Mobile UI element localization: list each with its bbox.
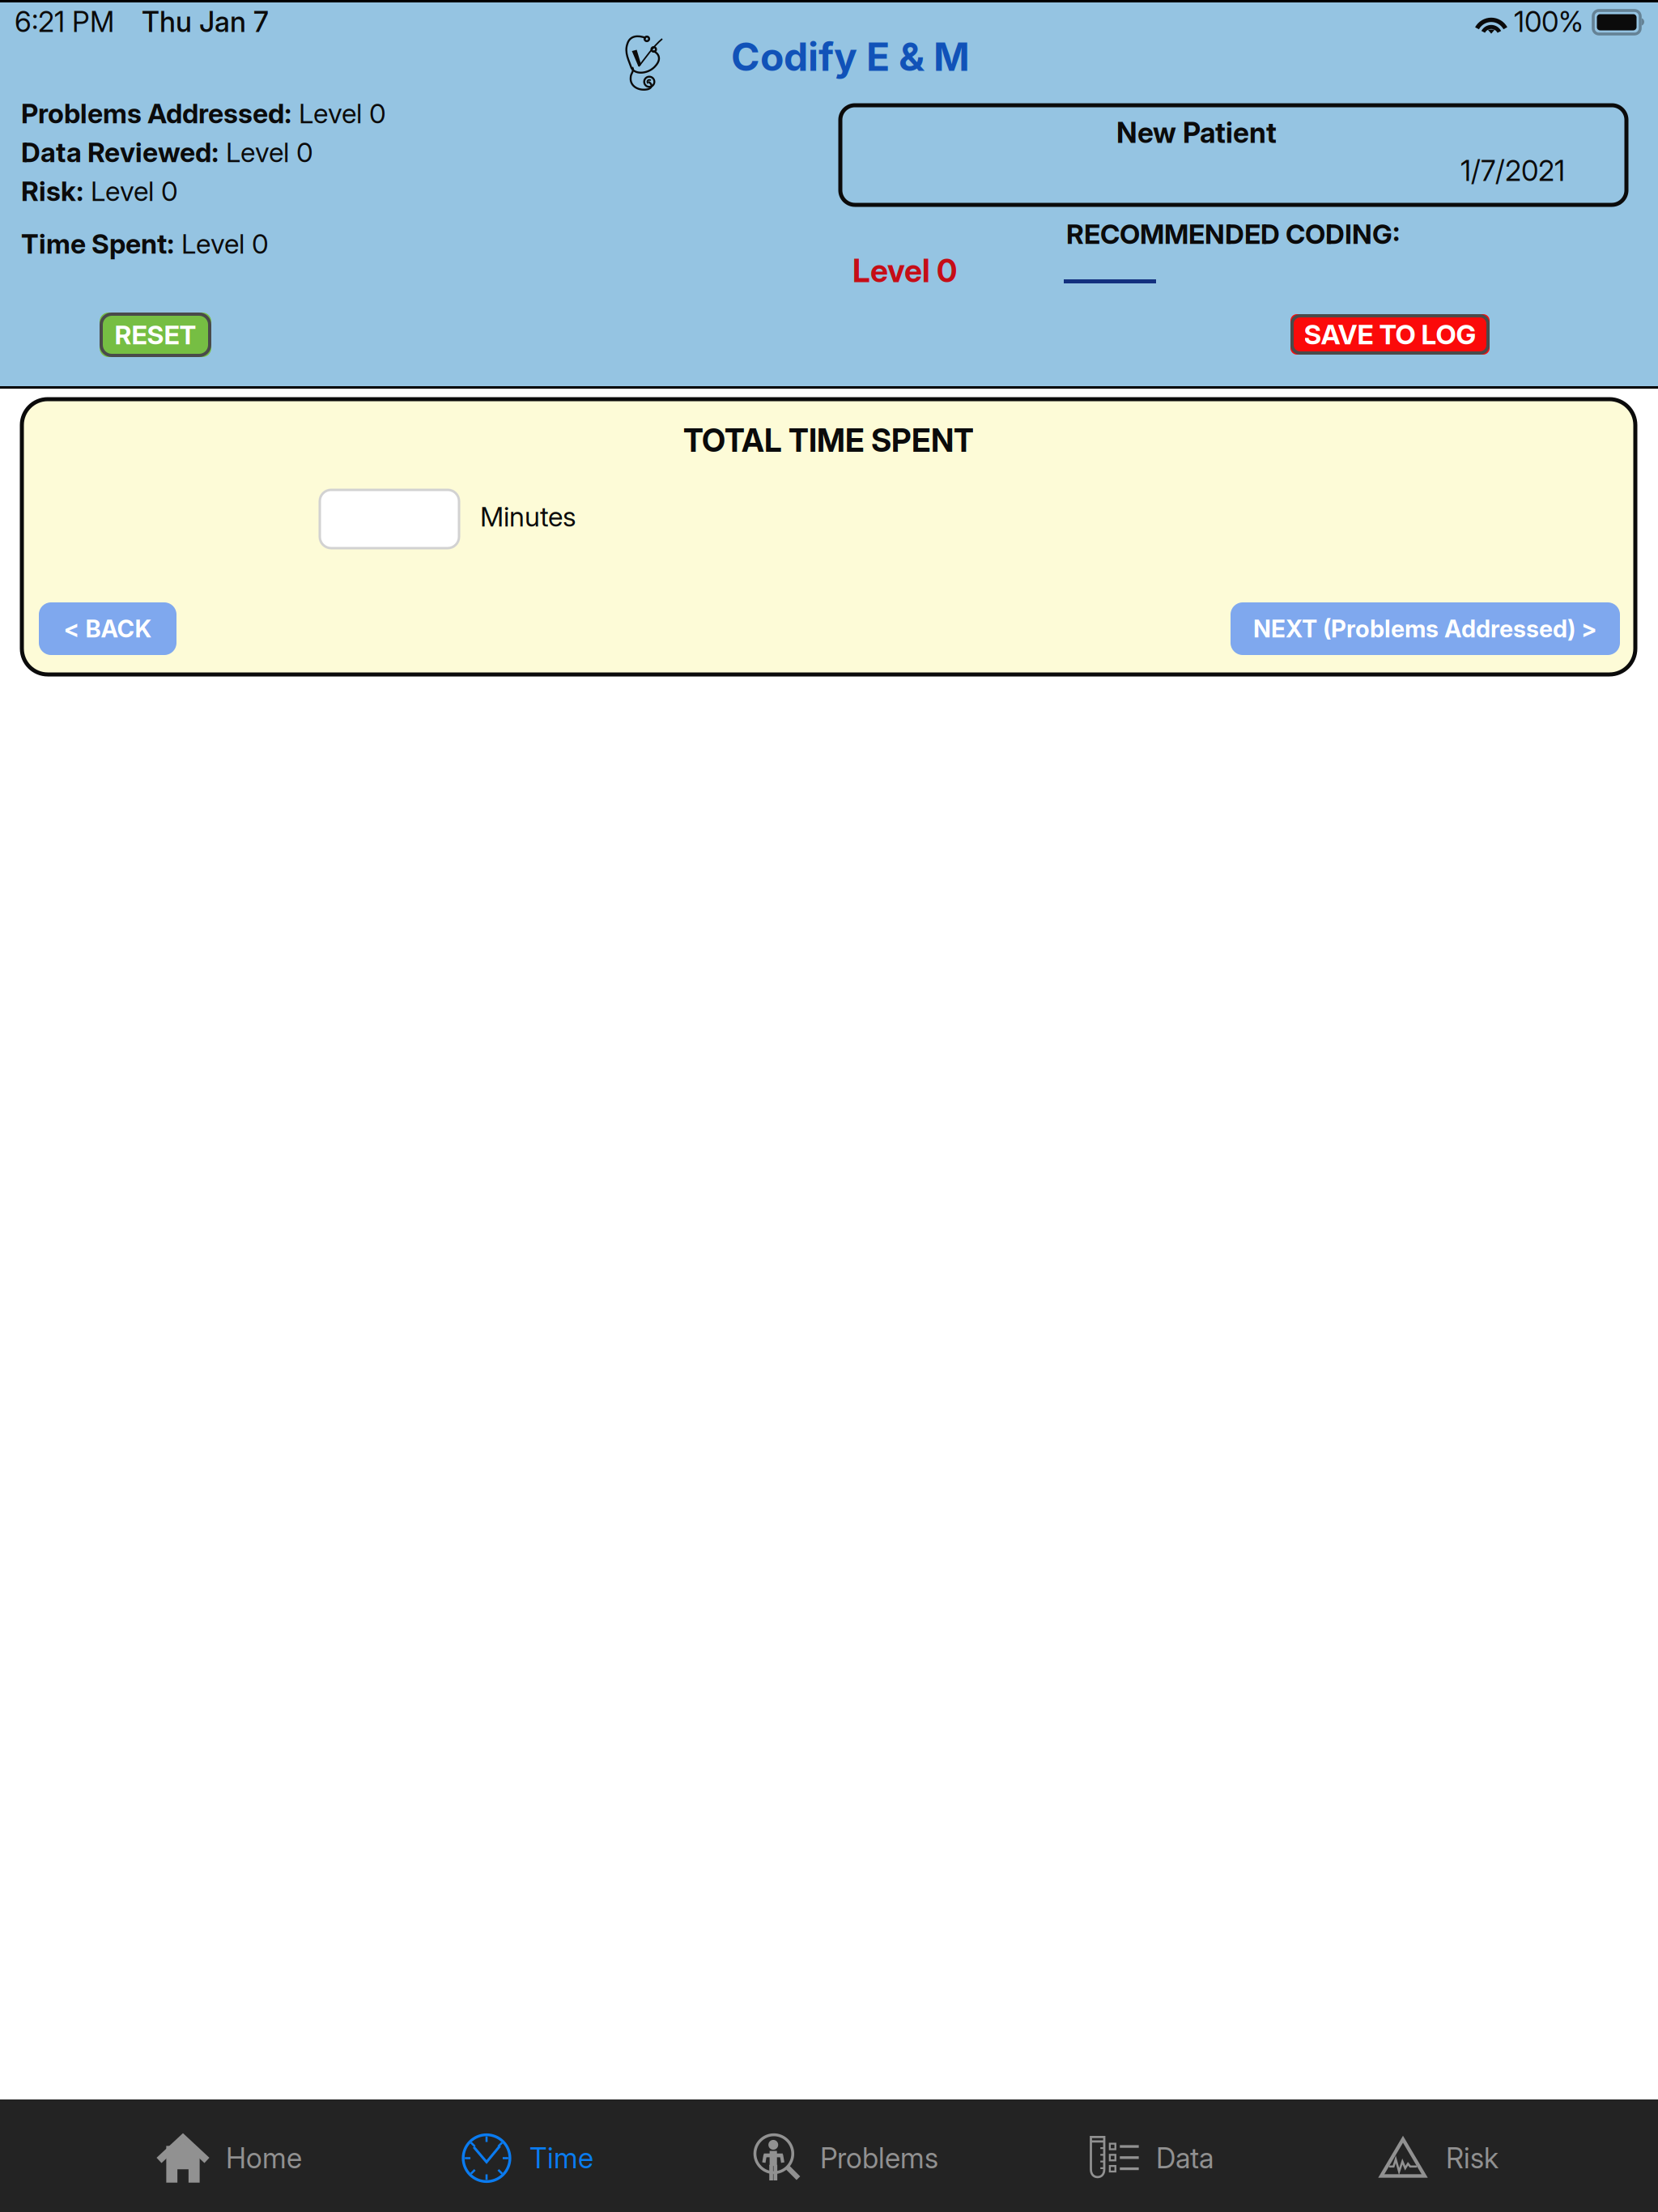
button[interactable]: Problems bbox=[750, 2102, 941, 2212]
staticText: Level 0 bbox=[852, 252, 957, 290]
staticText: NEXT (Problems Addressed) > bbox=[1253, 614, 1597, 643]
staticText: 1/7/2021 bbox=[1460, 154, 1565, 188]
button[interactable]: Data bbox=[1086, 2102, 1224, 2212]
button[interactable]: Home bbox=[156, 2102, 310, 2212]
staticText: Level 0 bbox=[174, 227, 269, 260]
staticText: Risk: bbox=[21, 175, 83, 207]
button[interactable]: RESET bbox=[100, 313, 211, 357]
staticText: Data bbox=[1156, 2141, 1214, 2175]
staticText: RECOMMENDED CODING: bbox=[1066, 218, 1400, 250]
staticText: Time bbox=[529, 2141, 593, 2175]
staticText: Risk bbox=[1446, 2141, 1499, 2175]
staticText: Problems bbox=[820, 2141, 938, 2175]
staticText: Time Spent: bbox=[21, 227, 174, 260]
staticText: Level 0 bbox=[291, 97, 386, 130]
staticText: Data Reviewed: bbox=[21, 136, 219, 168]
button[interactable]: < BACK bbox=[39, 602, 176, 655]
staticText: Codify E & M bbox=[731, 33, 970, 80]
button[interactable]: SAVE TO LOG bbox=[1290, 314, 1490, 355]
staticText: SAVE TO LOG bbox=[1304, 318, 1476, 351]
button[interactable]: Risk bbox=[1376, 2102, 1506, 2212]
staticText: Thu Jan 7 bbox=[142, 5, 269, 39]
staticText: Minutes bbox=[480, 500, 576, 533]
staticText: Level 0 bbox=[83, 175, 178, 207]
staticText: RESET bbox=[115, 319, 196, 350]
staticText: 6:21 PM bbox=[15, 5, 114, 39]
staticText: TOTAL TIME SPENT bbox=[683, 422, 974, 459]
staticText: Home bbox=[226, 2141, 302, 2175]
staticText: < BACK bbox=[64, 614, 152, 643]
staticText: Level 0 bbox=[219, 136, 313, 168]
staticText: 100% bbox=[1514, 5, 1584, 39]
staticText: New Patient bbox=[1116, 116, 1277, 150]
button[interactable]: NEXT (Problems Addressed) > bbox=[1231, 602, 1620, 655]
button[interactable]: Time bbox=[460, 2102, 602, 2212]
staticText: Problems Addressed: bbox=[21, 97, 291, 130]
